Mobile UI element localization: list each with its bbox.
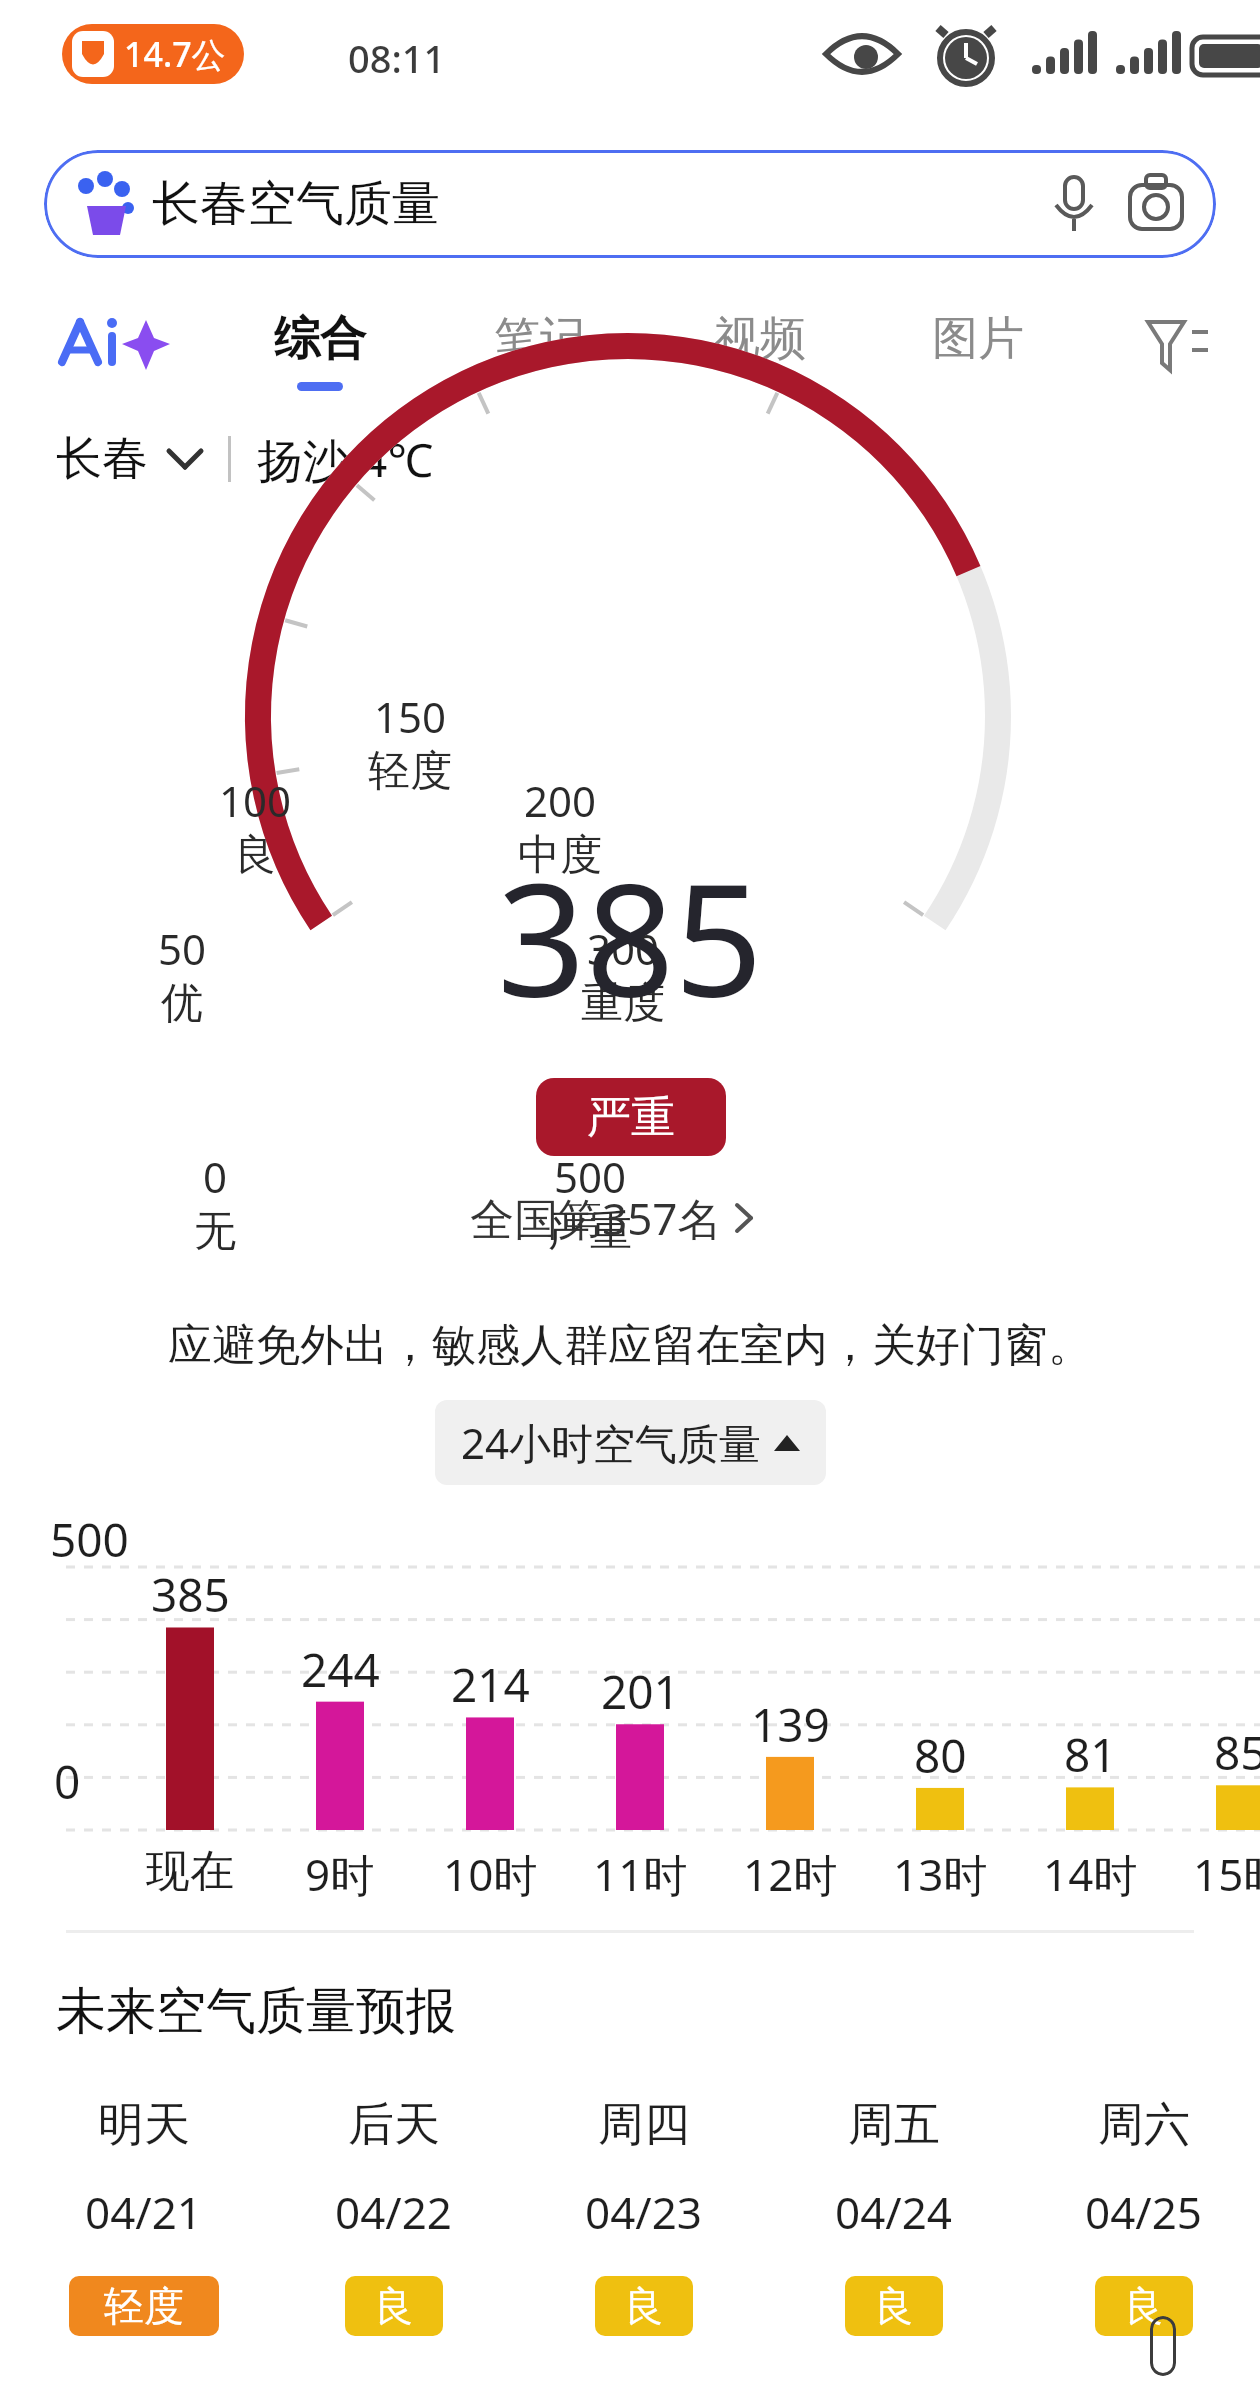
staticText: 100: [219, 772, 292, 829]
button[interactable]: 长春: [56, 430, 204, 488]
staticText: 244: [301, 1638, 380, 1701]
staticText: 扬沙 4℃: [257, 428, 434, 491]
staticText: 85: [1214, 1721, 1260, 1784]
staticText: 15时: [1193, 1844, 1260, 1904]
staticText: 214: [451, 1653, 530, 1716]
button[interactable]: 201: [565, 1660, 715, 1723]
staticText: 08:11: [348, 32, 446, 84]
staticText: 良: [624, 2281, 664, 2331]
staticText: 良: [374, 2281, 414, 2331]
staticText: 现在: [146, 1844, 234, 1899]
staticText: 良: [234, 829, 276, 882]
button[interactable]: 80: [865, 1724, 1015, 1787]
staticText: 04/22: [335, 2182, 453, 2242]
button[interactable]: 14.7公: [62, 24, 244, 84]
staticText: 周四: [598, 2096, 690, 2154]
button[interactable]: AI: [58, 314, 170, 372]
staticText: 500: [50, 1508, 129, 1571]
staticText: 04/24: [835, 2182, 953, 2242]
staticText: 13时: [893, 1844, 988, 1904]
staticText: 良: [1124, 2281, 1164, 2331]
staticText: 轻度: [104, 2281, 184, 2331]
button[interactable]: 385: [115, 1563, 265, 1626]
button[interactable]: Filter: [1146, 318, 1210, 374]
button[interactable]: 后天: [284, 2096, 504, 2336]
staticText: 10时: [443, 1844, 538, 1904]
staticText: 综合: [274, 310, 366, 368]
staticText: 11时: [593, 1844, 688, 1904]
button[interactable]: 严重: [536, 1078, 726, 1156]
staticText: 中度: [518, 829, 602, 882]
staticText: 12时: [743, 1844, 838, 1904]
button[interactable]: 周四: [534, 2096, 754, 2336]
staticText: 14.7公: [124, 31, 226, 77]
button[interactable]: 综合: [245, 296, 395, 400]
staticText: 优: [161, 977, 203, 1030]
staticText: 长春空气质量: [152, 174, 440, 234]
staticText: 轻度: [368, 745, 452, 798]
staticText: 笔记: [494, 310, 586, 368]
staticText: 图片: [932, 310, 1024, 368]
staticText: 0: [54, 1750, 81, 1813]
staticText: 385: [151, 1563, 230, 1626]
staticText: 全国第357名: [470, 1188, 722, 1248]
button[interactable]: 周六: [1034, 2096, 1254, 2336]
button[interactable]: Voice search: [1048, 173, 1100, 235]
staticText: 良: [874, 2281, 914, 2331]
staticText: 139: [751, 1693, 830, 1756]
button[interactable]: 图片: [903, 296, 1053, 400]
staticText: 严重: [587, 1090, 675, 1145]
staticText: 150: [374, 688, 447, 745]
staticText: 后天: [348, 2096, 440, 2154]
button[interactable]: 长春空气质量: [44, 150, 1216, 258]
staticText: 200: [524, 772, 597, 829]
button[interactable]: 139: [715, 1693, 865, 1756]
button[interactable]: 214: [415, 1653, 565, 1716]
staticText: 未来空气质量预报: [56, 1980, 456, 2043]
button[interactable]: 视频: [685, 296, 835, 400]
button[interactable]: 全国第357名: [470, 1188, 756, 1248]
staticText: 长春: [56, 430, 148, 488]
staticText: 04/25: [1085, 2182, 1203, 2242]
staticText: 50: [158, 920, 207, 977]
staticText: 80: [914, 1724, 967, 1787]
staticText: 385: [497, 830, 763, 1041]
staticText: 24小时空气质量: [461, 1414, 762, 1471]
staticText: 300: [587, 920, 660, 977]
staticText: 视频: [714, 310, 806, 368]
button[interactable]: 81: [1015, 1723, 1165, 1786]
button[interactable]: Camera search: [1126, 175, 1186, 233]
staticText: 应避免外出，敏感人群应留在室内，关好门窗。: [168, 1318, 1092, 1373]
staticText: 无: [194, 1205, 236, 1258]
staticText: 明天: [98, 2096, 190, 2154]
button[interactable]: 24小时空气质量: [435, 1400, 826, 1485]
button[interactable]: 244: [265, 1638, 415, 1701]
button[interactable]: 明天: [34, 2096, 254, 2336]
button[interactable]: 85: [1165, 1721, 1260, 1784]
staticText: 周五: [848, 2096, 940, 2154]
staticText: 严重: [548, 1205, 632, 1258]
staticText: 81: [1064, 1723, 1117, 1786]
button[interactable]: 笔记: [465, 296, 615, 400]
staticText: 04/21: [85, 2182, 203, 2242]
staticText: 14时: [1043, 1844, 1138, 1904]
staticText: 201: [601, 1660, 680, 1723]
staticText: 重度: [581, 977, 665, 1030]
button[interactable]: 周五: [784, 2096, 1004, 2336]
staticText: 0: [203, 1148, 228, 1205]
staticText: 周六: [1098, 2096, 1190, 2154]
staticText: 500: [554, 1148, 627, 1205]
staticText: 9时: [305, 1844, 375, 1904]
staticText: 04/23: [585, 2182, 703, 2242]
